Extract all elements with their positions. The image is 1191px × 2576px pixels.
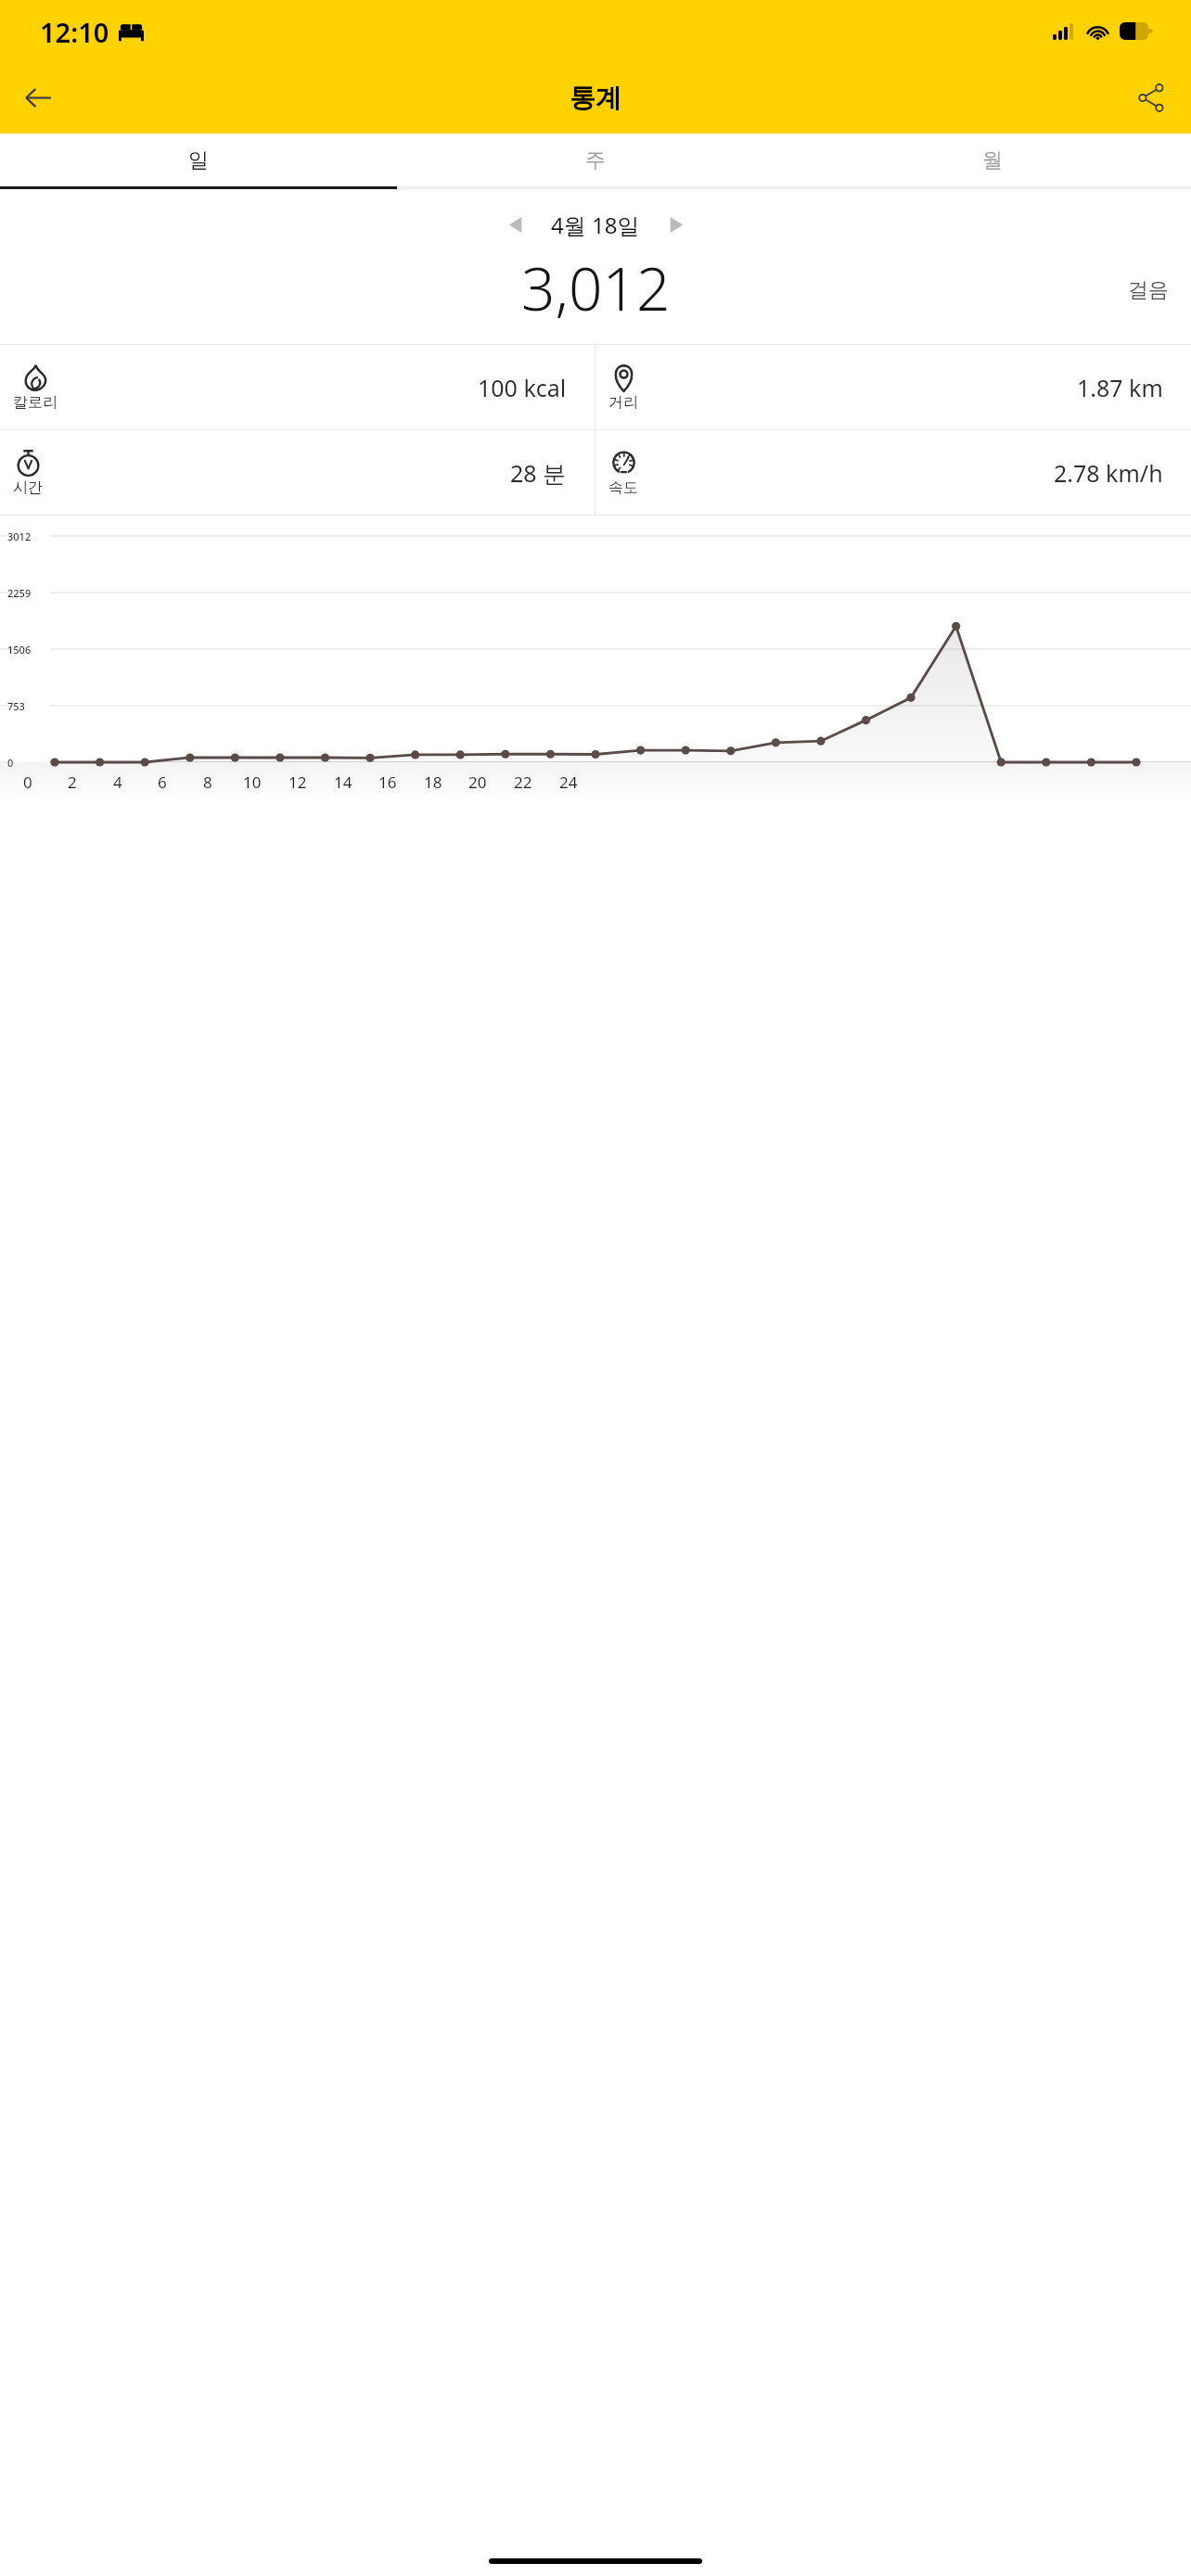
button[interactable]: 거리 xyxy=(595,345,1191,429)
button[interactable]: Next day xyxy=(655,204,698,245)
button[interactable]: 칼로리 xyxy=(0,345,595,429)
staticText: 24 xyxy=(559,772,578,793)
staticText: 28 분 xyxy=(510,457,567,489)
staticText: 18 xyxy=(424,772,442,793)
staticText: 16 xyxy=(378,772,397,793)
staticText: 3,012 xyxy=(521,248,671,328)
staticText: 걸음 xyxy=(1128,277,1169,303)
staticText: 1506 xyxy=(7,643,32,657)
staticText: 월 xyxy=(982,147,1003,173)
staticText: 칼로리 xyxy=(13,393,58,412)
staticText: 주 xyxy=(585,147,606,173)
staticText: 2.78 km/h xyxy=(1054,457,1163,489)
button[interactable]: Previous day xyxy=(493,204,536,245)
staticText: 100 kcal xyxy=(478,372,567,403)
staticText: 14 xyxy=(334,772,352,793)
staticText: 753 xyxy=(7,699,25,713)
staticText: 거리 xyxy=(608,393,638,412)
staticText: 10 xyxy=(243,772,262,793)
button[interactable]: 일 xyxy=(0,134,397,186)
button[interactable]: Share xyxy=(1122,69,1180,126)
staticText: 2259 xyxy=(7,586,32,600)
staticText: 0 xyxy=(23,772,32,793)
staticText: 4 xyxy=(113,772,122,793)
staticText: 2 xyxy=(68,772,77,793)
staticText: 8 xyxy=(203,772,212,793)
button[interactable]: 월 xyxy=(794,134,1191,186)
button[interactable]: Back xyxy=(9,69,67,126)
staticText: 6 xyxy=(158,772,167,793)
staticText: 시간 xyxy=(13,478,43,497)
staticText: 0 xyxy=(7,756,14,770)
staticText: 12 xyxy=(288,772,307,793)
staticText: 12:10 xyxy=(40,14,109,50)
button[interactable]: 시간 xyxy=(0,430,595,515)
staticText: 3012 xyxy=(7,529,32,543)
staticText: 1.87 km xyxy=(1077,372,1163,403)
staticText: 22 xyxy=(514,772,532,793)
staticText: 속도 xyxy=(608,478,638,497)
staticText: 4월 18일 xyxy=(551,210,640,240)
staticText: 20 xyxy=(468,772,487,793)
staticText: 통계 xyxy=(570,82,621,114)
staticText: 일 xyxy=(188,147,209,173)
button[interactable]: 속도 xyxy=(595,430,1191,515)
button[interactable]: 주 xyxy=(397,134,794,186)
